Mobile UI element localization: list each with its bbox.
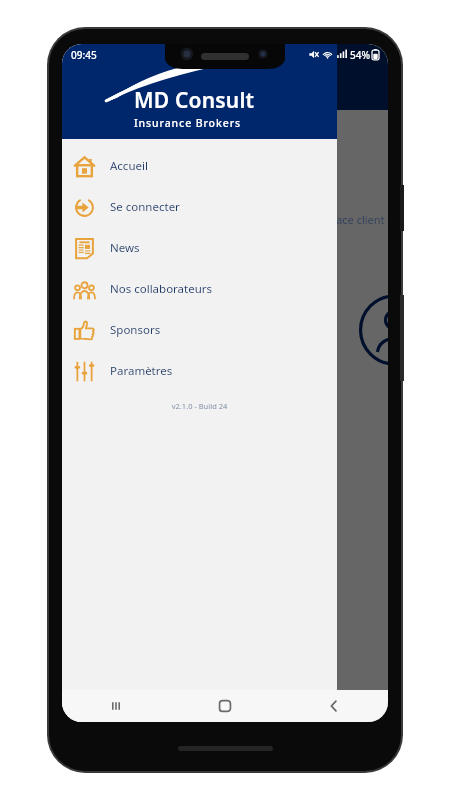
staticText: Se connecter bbox=[110, 199, 180, 215]
button[interactable]: Home bbox=[170, 690, 279, 722]
staticText: Paramètres bbox=[110, 363, 173, 379]
staticText: Insurance Brokers bbox=[134, 116, 241, 130]
button[interactable]: Recents bbox=[62, 690, 170, 722]
staticText: Accueil bbox=[110, 158, 148, 174]
button[interactable]: Accueil bbox=[62, 145, 337, 186]
staticText: 54% bbox=[350, 48, 370, 62]
button[interactable]: News bbox=[62, 227, 337, 268]
button[interactable]: Se connecter bbox=[62, 186, 337, 227]
staticText: MD Consult bbox=[134, 86, 255, 115]
button[interactable]: Paramètres bbox=[62, 350, 337, 391]
button[interactable]: Sponsors bbox=[62, 309, 337, 350]
staticText: Espace client bbox=[318, 212, 385, 227]
staticText: v2.1.0 - Build 24 bbox=[62, 401, 337, 411]
staticText: 09:45 bbox=[71, 48, 97, 62]
staticText: News bbox=[110, 240, 140, 256]
staticText: Sponsors bbox=[110, 322, 161, 338]
staticText: Nos collaborateurs bbox=[110, 281, 213, 297]
button[interactable]: Nos collaborateurs bbox=[62, 268, 337, 309]
button[interactable]: Back bbox=[279, 690, 388, 722]
